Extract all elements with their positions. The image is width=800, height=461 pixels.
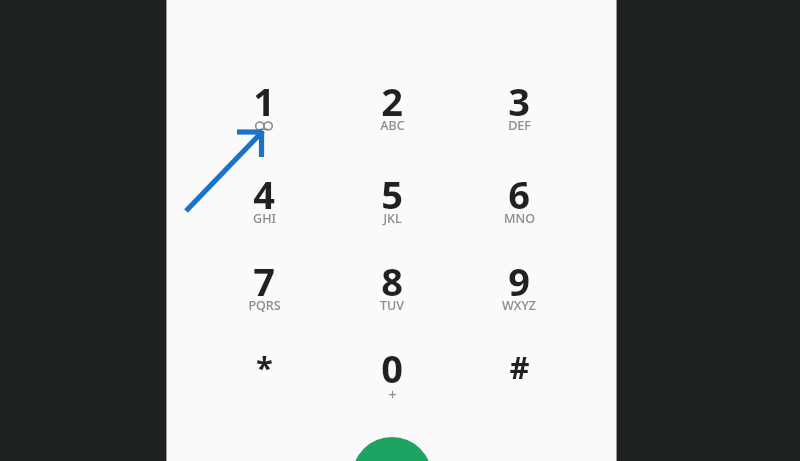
staticText: +: [388, 385, 397, 403]
button[interactable]: [336, 325, 448, 411]
staticText: 6: [508, 168, 530, 218]
staticText: ABC: [380, 117, 405, 134]
button[interactable]: [463, 238, 575, 324]
staticText: #: [509, 346, 530, 388]
staticText: GHI: [253, 210, 276, 227]
button[interactable]: [336, 151, 448, 237]
staticText: DEF: [508, 117, 531, 134]
staticText: 9: [508, 255, 530, 305]
staticText: 3: [508, 75, 530, 125]
staticText: 2: [381, 75, 403, 125]
staticText: WXYZ: [502, 297, 536, 314]
button[interactable]: [208, 325, 320, 411]
staticText: 7: [253, 255, 275, 305]
button[interactable]: [463, 151, 575, 237]
button[interactable]: [463, 58, 575, 144]
staticText: 0: [381, 342, 403, 392]
staticText: JKL: [383, 210, 402, 227]
button[interactable]: [336, 238, 448, 324]
button[interactable]: [336, 58, 448, 144]
button[interactable]: Call: [352, 437, 432, 461]
staticText: 5: [381, 168, 403, 218]
button[interactable]: [208, 58, 320, 144]
other: Voicemail: [252, 118, 276, 134]
staticText: *: [256, 346, 273, 388]
button[interactable]: [208, 238, 320, 324]
staticText: 4: [253, 168, 275, 218]
staticText: PQRS: [248, 297, 281, 314]
staticText: TUV: [380, 297, 404, 314]
staticText: 1: [253, 75, 275, 125]
staticText: 8: [381, 255, 403, 305]
staticText: MNO: [504, 210, 535, 227]
button[interactable]: [463, 325, 575, 411]
button[interactable]: [208, 151, 320, 237]
